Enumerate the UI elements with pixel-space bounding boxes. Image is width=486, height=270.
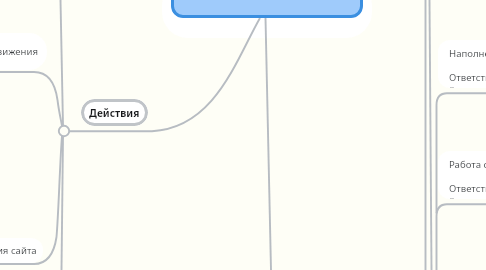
button[interactable]: Работа с кли [438, 151, 486, 199]
staticText: движения [0, 45, 38, 58]
staticText: Ответственный [449, 182, 486, 199]
staticText: ния сайта [0, 244, 37, 257]
button[interactable] [171, 0, 363, 18]
staticText: Работа с кли [449, 158, 486, 171]
staticText: Действия [89, 106, 140, 120]
button[interactable]: Действия [81, 99, 148, 126]
staticText: Наполнение [449, 47, 486, 60]
button[interactable]: ния сайта [0, 238, 43, 263]
staticText: Ответственный [449, 71, 486, 88]
button[interactable]: Наполнение [438, 40, 486, 88]
button[interactable]: движения [0, 33, 47, 70]
